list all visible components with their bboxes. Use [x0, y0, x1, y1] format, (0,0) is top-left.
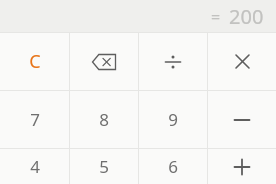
button[interactable]: Minus: [208, 91, 276, 148]
staticText: 5: [99, 155, 109, 178]
staticText: =: [211, 6, 221, 28]
staticText: 6: [168, 155, 178, 178]
button[interactable]: 9: [139, 91, 207, 148]
button[interactable]: 6: [139, 149, 207, 184]
staticText: C: [29, 49, 41, 74]
staticText: 4: [30, 155, 40, 178]
button[interactable]: 7: [0, 91, 69, 148]
button[interactable]: Divide: [139, 33, 207, 90]
button[interactable]: 5: [70, 149, 138, 184]
staticText: 9: [168, 108, 178, 131]
button[interactable]: Plus: [208, 149, 276, 184]
button[interactable]: 4: [0, 149, 69, 184]
button[interactable]: Backspace: [70, 33, 138, 90]
staticText: 8: [99, 108, 109, 131]
staticText: 200: [229, 3, 264, 30]
button[interactable]: Multiply: [208, 33, 276, 90]
button[interactable]: C: [0, 33, 69, 90]
staticText: 7: [30, 108, 40, 131]
button[interactable]: 8: [70, 91, 138, 148]
